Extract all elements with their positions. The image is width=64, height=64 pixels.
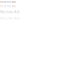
staticText: Recents AB <box>0 0 16 3</box>
staticText: Recents AB <box>0 15 20 21</box>
staticText: Recents AB <box>0 9 20 14</box>
staticText: Recents AB <box>0 4 16 8</box>
